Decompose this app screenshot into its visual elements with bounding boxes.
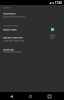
staticText: Random Water Tint xyxy=(3,37,24,40)
button[interactable]: Unchecked xyxy=(48,32,56,40)
staticText: Select background image xyxy=(3,15,25,18)
staticText: Background xyxy=(3,12,16,15)
button[interactable] xyxy=(0,26,64,32)
button[interactable]: Home xyxy=(21,92,40,100)
button[interactable]: Recents xyxy=(40,92,59,100)
staticText: Background xyxy=(3,13,16,16)
staticText: Water color reflects view xyxy=(3,39,25,42)
staticText: Ripple Size xyxy=(3,49,15,52)
staticText: Random Water Tint xyxy=(3,36,24,39)
staticText: Enable Water xyxy=(3,28,17,31)
staticText: Select background image xyxy=(3,16,25,19)
button[interactable]: Checked xyxy=(48,25,56,33)
button[interactable]: Back xyxy=(2,92,21,100)
staticText: Live Water Effect xyxy=(3,25,19,28)
staticText: Ripple Size xyxy=(3,48,15,51)
staticText: Live Water Effect xyxy=(3,24,19,27)
staticText: Medium sized ripples xyxy=(3,51,22,54)
staticText: Water color reflects view xyxy=(3,40,25,43)
staticText: Medium sized ripples xyxy=(3,50,22,53)
button[interactable] xyxy=(0,34,64,41)
staticText: 17:26 xyxy=(55,1,62,5)
staticText: General xyxy=(3,6,11,9)
staticText: Enable Water xyxy=(3,29,17,32)
button[interactable] xyxy=(0,46,64,53)
staticText: General xyxy=(3,7,11,10)
button[interactable] xyxy=(0,10,64,17)
